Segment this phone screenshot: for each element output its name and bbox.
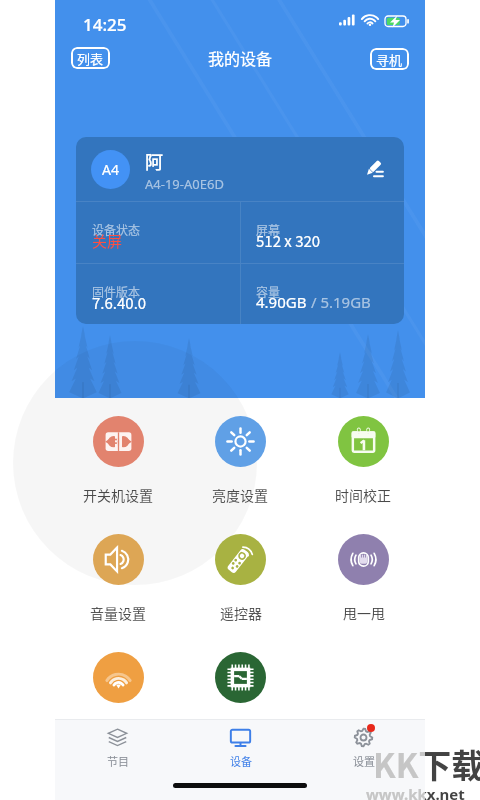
- staticText: A4: [102, 160, 119, 179]
- staticText: 时间校正: [335, 485, 391, 505]
- button[interactable]: 时间校正: [315, 416, 411, 516]
- button[interactable]: Edit name: [358, 152, 392, 186]
- button[interactable]: 寻机: [370, 48, 409, 70]
- staticText: 屏幕: [256, 221, 281, 238]
- staticText: 列表: [77, 49, 104, 68]
- staticText: 14:25: [83, 13, 127, 36]
- button[interactable]: 遥控器: [192, 534, 288, 634]
- button[interactable]: [70, 652, 166, 752]
- staticText: 我的设备: [208, 46, 273, 69]
- staticText: 容量: [256, 283, 281, 300]
- staticText: 甩一甩: [343, 603, 385, 623]
- staticText: www.kkx.net: [366, 784, 465, 800]
- button[interactable]: 音量设置: [70, 534, 166, 634]
- staticText: / 5.19GB: [307, 292, 371, 312]
- staticText: 阿: [145, 148, 163, 174]
- staticText: 固件版本: [92, 283, 141, 300]
- staticText: 亮度设置: [212, 485, 268, 505]
- staticText: 设置: [353, 753, 375, 769]
- staticText: 设备: [230, 753, 252, 769]
- staticText: 512 x 320: [256, 230, 321, 252]
- button[interactable]: 甩一甩: [315, 534, 411, 634]
- staticText: KK下载: [373, 740, 480, 788]
- staticText: 寻机: [376, 50, 403, 69]
- button[interactable]: 设备: [179, 720, 302, 774]
- staticText: 4.90GB: [256, 292, 307, 312]
- staticText: A4-19-A0E6D: [145, 175, 224, 193]
- staticText: 7.6.40.0: [92, 292, 147, 314]
- button[interactable]: 节目: [55, 720, 179, 774]
- button[interactable]: 设置: [302, 720, 425, 774]
- staticText: 开关机设置: [83, 485, 153, 505]
- staticText: KK下载: [373, 740, 425, 788]
- button[interactable]: 开关机设置: [70, 416, 166, 516]
- staticText: www.kkx.net: [366, 784, 425, 800]
- staticText: 音量设置: [90, 603, 146, 623]
- button[interactable]: 亮度设置: [192, 416, 288, 516]
- staticText: 遥控器: [220, 603, 262, 623]
- staticText: 设备状态: [92, 221, 141, 238]
- button[interactable]: 列表: [71, 47, 110, 69]
- button[interactable]: [192, 652, 288, 752]
- staticText: 节目: [107, 753, 129, 769]
- staticText: 关屏: [92, 230, 123, 252]
